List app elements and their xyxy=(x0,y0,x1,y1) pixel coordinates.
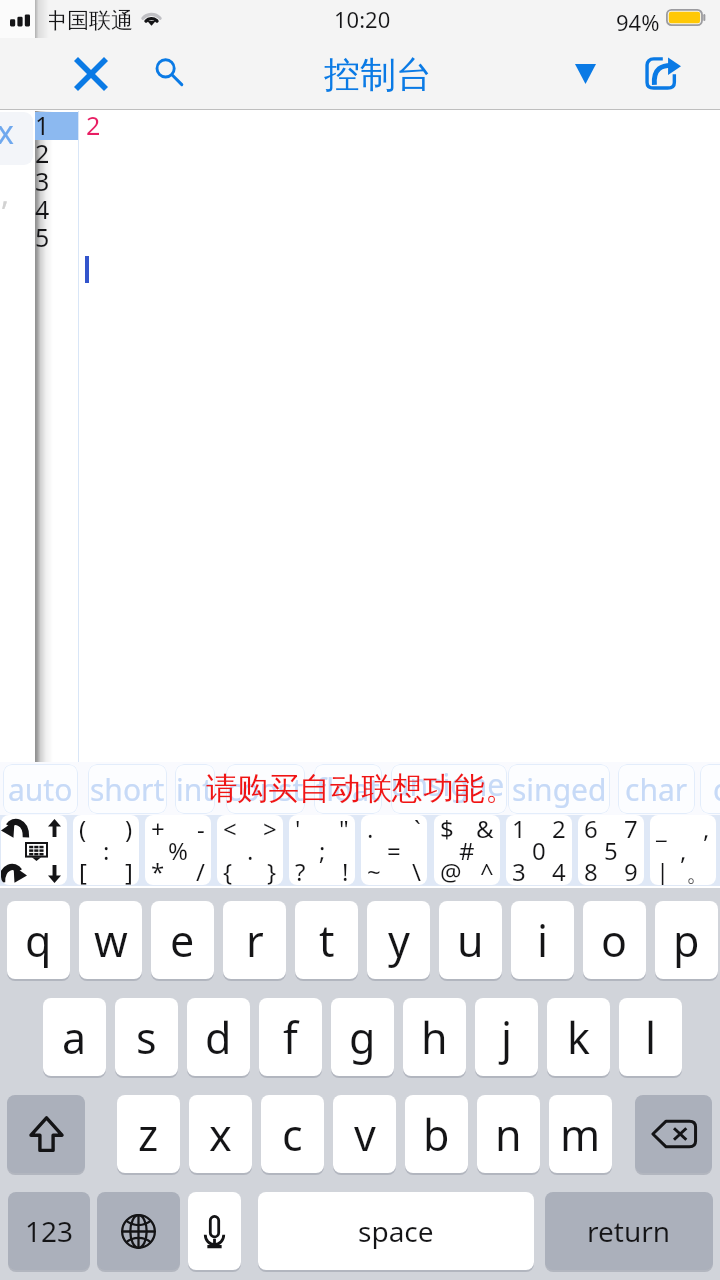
staticText: s xyxy=(136,1008,157,1067)
button[interactable]: short xyxy=(88,764,167,814)
button[interactable]: singed xyxy=(508,764,610,814)
button[interactable]: char xyxy=(618,764,695,814)
button[interactable]: ' xyxy=(289,815,355,885)
staticText: 3 xyxy=(512,855,526,885)
button[interactable]: j xyxy=(475,998,538,1076)
button[interactable]: c xyxy=(700,764,720,814)
button[interactable]: x xyxy=(0,112,33,165)
staticText: b xyxy=(423,1105,450,1164)
staticText: / xyxy=(196,855,205,885)
button[interactable]: More options xyxy=(555,38,615,110)
button[interactable]: Move up xyxy=(48,819,61,837)
button[interactable]: ( xyxy=(73,815,139,885)
staticText: k xyxy=(567,1008,590,1067)
button[interactable]: Move down xyxy=(48,865,61,883)
button[interactable]: Backspace xyxy=(635,1095,712,1173)
button[interactable]: Switch keyboard xyxy=(97,1192,180,1270)
button[interactable]: k xyxy=(547,998,610,1076)
button[interactable]: v xyxy=(333,1095,396,1173)
button[interactable]: m xyxy=(549,1095,612,1173)
button[interactable]: z xyxy=(117,1095,180,1173)
button[interactable]: u xyxy=(439,901,502,979)
button[interactable]: p xyxy=(655,901,718,979)
button[interactable]: 1 xyxy=(506,815,572,885)
staticText: @ xyxy=(440,855,462,885)
staticText: n xyxy=(495,1105,522,1164)
staticText: 123 xyxy=(25,1212,74,1250)
button[interactable]: $ xyxy=(434,815,500,885)
button[interactable]: s xyxy=(115,998,178,1076)
button[interactable]: h xyxy=(403,998,466,1076)
button[interactable]: const xyxy=(226,764,305,814)
staticText: 5 xyxy=(35,220,50,248)
staticText: v xyxy=(354,1105,376,1164)
staticText: short xyxy=(90,769,165,810)
staticText: ? xyxy=(295,855,306,885)
staticText: 5 xyxy=(604,834,618,867)
button[interactable]: e xyxy=(151,901,214,979)
button[interactable]: r xyxy=(223,901,286,979)
staticText: % xyxy=(168,834,188,867)
button[interactable]: 6 xyxy=(578,815,644,885)
staticText: 94% xyxy=(616,7,660,37)
button[interactable]: n xyxy=(477,1095,540,1173)
button[interactable]: x xyxy=(189,1095,252,1173)
staticText: { xyxy=(223,855,233,885)
button[interactable]: Shift xyxy=(7,1095,85,1173)
staticText: ( xyxy=(79,815,87,845)
button[interactable]: d xyxy=(187,998,250,1076)
button[interactable]: Share xyxy=(633,38,693,110)
staticText: i xyxy=(537,911,549,970)
button[interactable]: 123 xyxy=(8,1192,90,1270)
button[interactable]: float xyxy=(314,764,382,814)
staticText: 0 xyxy=(532,834,546,867)
button[interactable]: l xyxy=(619,998,682,1076)
button[interactable]: Search xyxy=(138,38,198,110)
button[interactable]: . xyxy=(361,815,427,885)
staticText: 2 xyxy=(552,815,566,845)
button[interactable]: int xyxy=(175,764,215,814)
button[interactable]: _ xyxy=(650,815,716,885)
staticText: ! xyxy=(342,855,349,885)
staticText: 6 xyxy=(584,815,598,845)
staticText: _ xyxy=(656,815,667,845)
button[interactable]: g xyxy=(331,998,394,1076)
staticText: c xyxy=(282,1105,303,1164)
button[interactable]: return xyxy=(545,1192,713,1270)
button[interactable]: Close xyxy=(60,38,122,110)
staticText: 请购买自动联想功能。 xyxy=(206,769,516,808)
button[interactable]: + xyxy=(145,815,211,885)
staticText: : xyxy=(103,834,110,867)
button[interactable]: o xyxy=(583,901,646,979)
staticText: x xyxy=(0,112,14,154)
button[interactable]: w xyxy=(79,901,142,979)
staticText: " xyxy=(339,815,349,845)
staticText: + xyxy=(151,815,165,845)
staticText: x xyxy=(209,1105,232,1164)
button[interactable]: Redo xyxy=(1,863,27,882)
button[interactable]: Hide keyboard xyxy=(25,842,48,861)
button[interactable]: q xyxy=(7,901,70,979)
staticText: 1 xyxy=(35,108,50,136)
button[interactable]: Undo xyxy=(1,818,27,837)
staticText: ] xyxy=(125,855,133,885)
button[interactable]: t xyxy=(295,901,358,979)
button[interactable]: Dictate xyxy=(188,1192,241,1270)
staticText: int xyxy=(176,769,214,810)
button[interactable]: i xyxy=(511,901,574,979)
staticText: 7 xyxy=(624,815,638,845)
button[interactable]: y xyxy=(367,901,430,979)
button[interactable]: f xyxy=(259,998,322,1076)
button[interactable]: space xyxy=(258,1192,534,1270)
staticText: o xyxy=(601,911,628,970)
staticText: q xyxy=(25,911,52,970)
button[interactable]: b xyxy=(405,1095,468,1173)
staticText: c xyxy=(713,769,720,810)
button[interactable]: c xyxy=(261,1095,324,1173)
button[interactable]: a xyxy=(43,998,106,1076)
button[interactable]: auto xyxy=(3,764,78,814)
button[interactable]: < xyxy=(217,815,283,885)
staticText: m xyxy=(560,1105,601,1164)
staticText: e xyxy=(170,911,195,970)
button[interactable]: unsigned xyxy=(391,764,507,814)
